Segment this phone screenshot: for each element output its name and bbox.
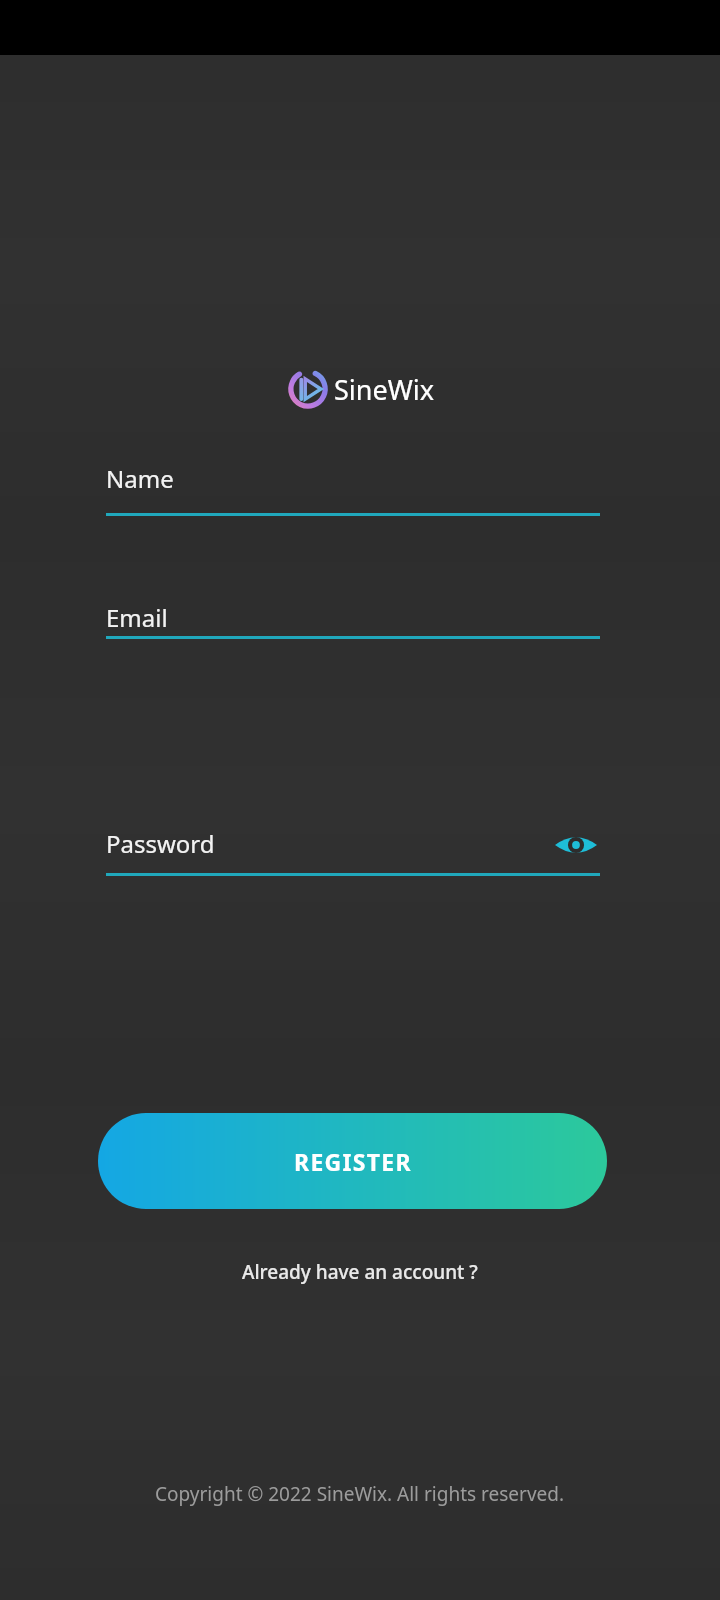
staticText: Name — [106, 462, 174, 495]
staticText: Already have an account ? — [242, 1259, 478, 1285]
button[interactable]: Name — [106, 462, 600, 516]
staticText: Copyright © 2022 SineWix. All rights res… — [155, 1481, 565, 1507]
button[interactable]: REGISTER — [98, 1113, 607, 1209]
button[interactable]: Password — [106, 827, 600, 876]
button[interactable]: Already have an account ? — [0, 1252, 720, 1292]
staticText: Password — [106, 827, 215, 860]
staticText: REGISTER — [294, 1146, 412, 1177]
staticText: SineWix — [334, 371, 435, 408]
button[interactable]: Email — [106, 601, 600, 639]
button[interactable]: Show password — [552, 827, 600, 863]
staticText: Email — [106, 601, 168, 634]
